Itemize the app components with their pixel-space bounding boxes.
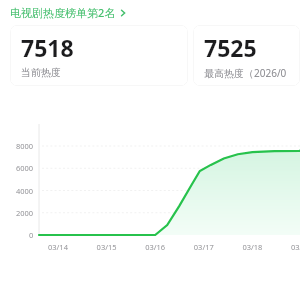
- staticText: 当前热度: [21, 66, 61, 79]
- button[interactable]: 电视剧热度榜单第2名: [10, 5, 127, 20]
- staticText: 7518: [21, 32, 74, 63]
- staticText: 电视剧热度榜单第2名: [10, 5, 116, 20]
- staticText: 7525: [204, 32, 257, 63]
- staticText: 最高热度（2026/0: [204, 66, 287, 80]
- button[interactable]: 7525: [193, 25, 300, 86]
- button[interactable]: 7518: [10, 25, 188, 86]
- other: Open ranking: [119, 9, 127, 17]
